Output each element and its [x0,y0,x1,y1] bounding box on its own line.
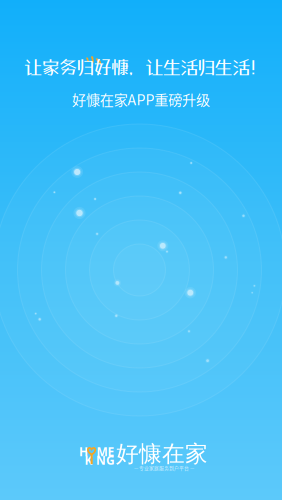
staticText: 让家务归好慷，让生活归生活！ [24,56,268,78]
staticText: 好慷在家 [116,440,208,468]
staticText: NG [96,452,115,468]
staticText: ME [96,443,114,459]
staticText: — 专业家庭服务到户平台 — [134,464,194,471]
staticText: H [79,443,88,459]
staticText: 好慷在家APP重磅升级 [72,89,210,109]
staticText: K [84,452,92,468]
